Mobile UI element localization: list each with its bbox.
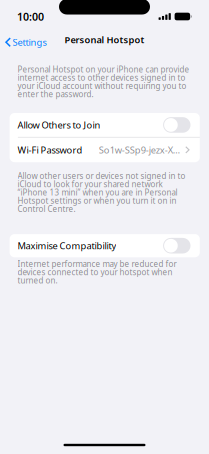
staticText: Personal Hotspot (64, 33, 144, 46)
staticText: Personal Hotspot on your iPhone can prov… (18, 64, 190, 99)
staticText: Maximise Compatibility (17, 239, 116, 252)
staticText: Internet performance may be reduced for … (18, 259, 177, 286)
button[interactable]: Wi-Fi Password (10, 137, 200, 162)
button[interactable]: Settings (1, 31, 51, 53)
button[interactable]: Allow Others to Join (10, 113, 200, 137)
staticText: Allow Others to Join (17, 119, 100, 131)
staticText: So1w-SSp9-jezx-X… (99, 144, 180, 156)
staticText: 10:00 (17, 9, 44, 24)
staticText: Allow other users or devices not signed … (18, 171, 186, 214)
staticText: Settings (13, 36, 47, 48)
staticText: Wi-Fi Password (17, 144, 82, 156)
button[interactable]: Maximise Compatibility (10, 234, 200, 257)
